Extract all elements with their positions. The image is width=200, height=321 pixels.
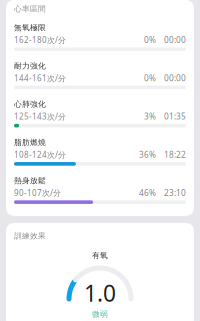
staticText: 46% — [139, 187, 156, 198]
staticText: 心率區間 — [14, 4, 46, 14]
staticText: 23:10 — [164, 187, 186, 198]
staticText: 脂肪燃燒 — [14, 137, 46, 147]
staticText: 108-124次/分 — [14, 149, 66, 160]
staticText: 125-143次/分 — [14, 111, 66, 122]
staticText: 耐力強化 — [14, 61, 46, 71]
staticText: 18:22 — [164, 149, 186, 160]
staticText: 有氧 — [92, 251, 108, 260]
staticText: 0% — [144, 72, 156, 84]
staticText: 心肺強化 — [14, 99, 46, 109]
staticText: 36% — [139, 149, 156, 160]
staticText: 00:00 — [164, 72, 186, 84]
staticText: 00:00 — [164, 34, 186, 45]
staticText: 1.0 — [84, 277, 116, 308]
staticText: 01:35 — [164, 111, 186, 122]
staticText: 144-161次/分 — [14, 73, 66, 84]
staticText: 0% — [144, 34, 156, 45]
staticText: 3% — [144, 111, 156, 122]
staticText: 無氧極限 — [14, 23, 46, 32]
staticText: 90-107次/分 — [14, 187, 61, 198]
staticText: 熱身放鬆 — [14, 176, 46, 185]
staticText: 162-180次/分 — [14, 34, 66, 45]
staticText: 訓練效果 — [14, 231, 46, 241]
staticText: 微弱 — [92, 309, 108, 319]
